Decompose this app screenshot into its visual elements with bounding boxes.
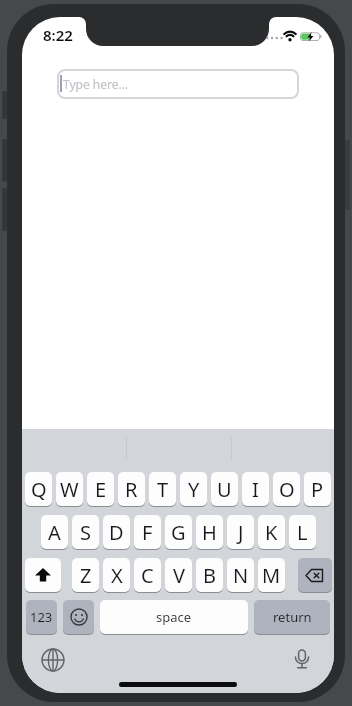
staticText: N bbox=[233, 562, 249, 589]
staticText: U bbox=[217, 476, 232, 503]
staticText: E bbox=[95, 476, 107, 503]
staticText: Z bbox=[80, 562, 92, 589]
staticText: O bbox=[279, 476, 295, 503]
staticText: space bbox=[156, 608, 192, 626]
staticText: V bbox=[173, 562, 185, 589]
staticText: C bbox=[141, 562, 154, 589]
staticText: D bbox=[109, 519, 124, 546]
staticText: X bbox=[111, 562, 123, 589]
staticText: Type here... bbox=[63, 76, 129, 92]
staticText: P bbox=[311, 476, 324, 503]
staticText: A bbox=[48, 519, 61, 546]
staticText: M bbox=[262, 562, 281, 589]
staticText: Q bbox=[31, 476, 47, 503]
staticText: return bbox=[273, 608, 312, 626]
staticText: S bbox=[80, 519, 91, 546]
staticText: R bbox=[125, 476, 138, 503]
staticText: T bbox=[157, 476, 169, 503]
staticText: F bbox=[142, 519, 153, 546]
staticText: 123 bbox=[30, 608, 53, 626]
staticText: L bbox=[297, 519, 308, 546]
staticText: Y bbox=[188, 476, 200, 503]
staticText: G bbox=[171, 519, 186, 546]
staticText: I bbox=[252, 476, 259, 503]
staticText: B bbox=[203, 562, 216, 589]
staticText: J bbox=[238, 519, 244, 546]
staticText: K bbox=[265, 519, 278, 546]
staticText: H bbox=[202, 519, 217, 546]
staticText: W bbox=[60, 476, 79, 503]
staticText: 8:22 bbox=[43, 25, 73, 45]
